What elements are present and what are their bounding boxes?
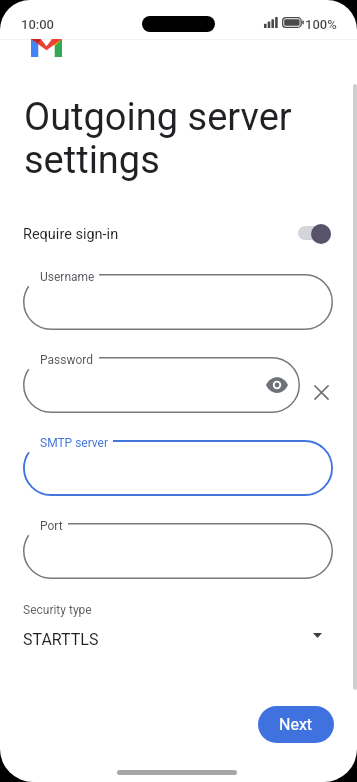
staticText: Next (279, 715, 313, 734)
staticText: STARTTLS (23, 630, 99, 649)
button[interactable]: Password (23, 357, 300, 413)
button[interactable]: SMTP server (23, 440, 333, 496)
staticText: Username (40, 270, 95, 284)
staticText: Security type (23, 603, 92, 617)
button[interactable]: Show password (260, 368, 294, 402)
button[interactable]: Security type (0, 596, 357, 652)
button[interactable]: Next (258, 706, 334, 743)
staticText: Password (40, 353, 94, 367)
staticText: Outgoing server settings (24, 95, 292, 182)
button[interactable]: Clear password (306, 377, 337, 408)
staticText: Port (40, 519, 63, 533)
staticText: Require sign-in (23, 226, 119, 243)
button[interactable]: Username (23, 274, 333, 330)
button[interactable]: Require sign-in (298, 223, 331, 245)
staticText: SMTP server (40, 436, 109, 450)
staticText: 100% (305, 17, 337, 32)
staticText: 10:00 (21, 17, 54, 32)
button[interactable]: Port (23, 523, 333, 579)
button[interactable]: Require sign-in (0, 212, 357, 256)
